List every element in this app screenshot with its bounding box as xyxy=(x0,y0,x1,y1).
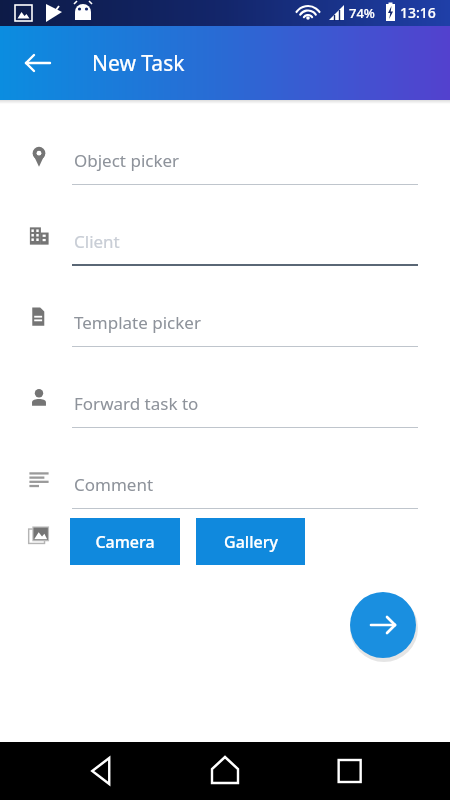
button[interactable]: Client xyxy=(70,220,420,266)
staticText: Template picker xyxy=(74,311,201,334)
button[interactable]: Template picker xyxy=(70,301,420,347)
button[interactable]: Object picker xyxy=(70,139,420,185)
staticText: Gallery xyxy=(224,531,278,553)
button[interactable]: Back xyxy=(14,39,62,87)
staticText: Camera xyxy=(95,531,155,553)
staticText: Client xyxy=(74,230,120,253)
button[interactable]: Gallery xyxy=(196,518,305,565)
staticText: New Task xyxy=(92,49,185,78)
button[interactable]: Comment xyxy=(70,463,420,509)
button[interactable]: Camera xyxy=(70,518,180,565)
staticText: Forward task to xyxy=(74,392,199,415)
staticText: 13:16 xyxy=(400,3,436,22)
staticText: Object picker xyxy=(74,149,180,172)
staticText: 74% xyxy=(349,4,375,22)
staticText: Comment xyxy=(74,473,154,496)
button[interactable]: Next xyxy=(350,592,416,658)
button[interactable]: Forward task to xyxy=(70,382,420,428)
